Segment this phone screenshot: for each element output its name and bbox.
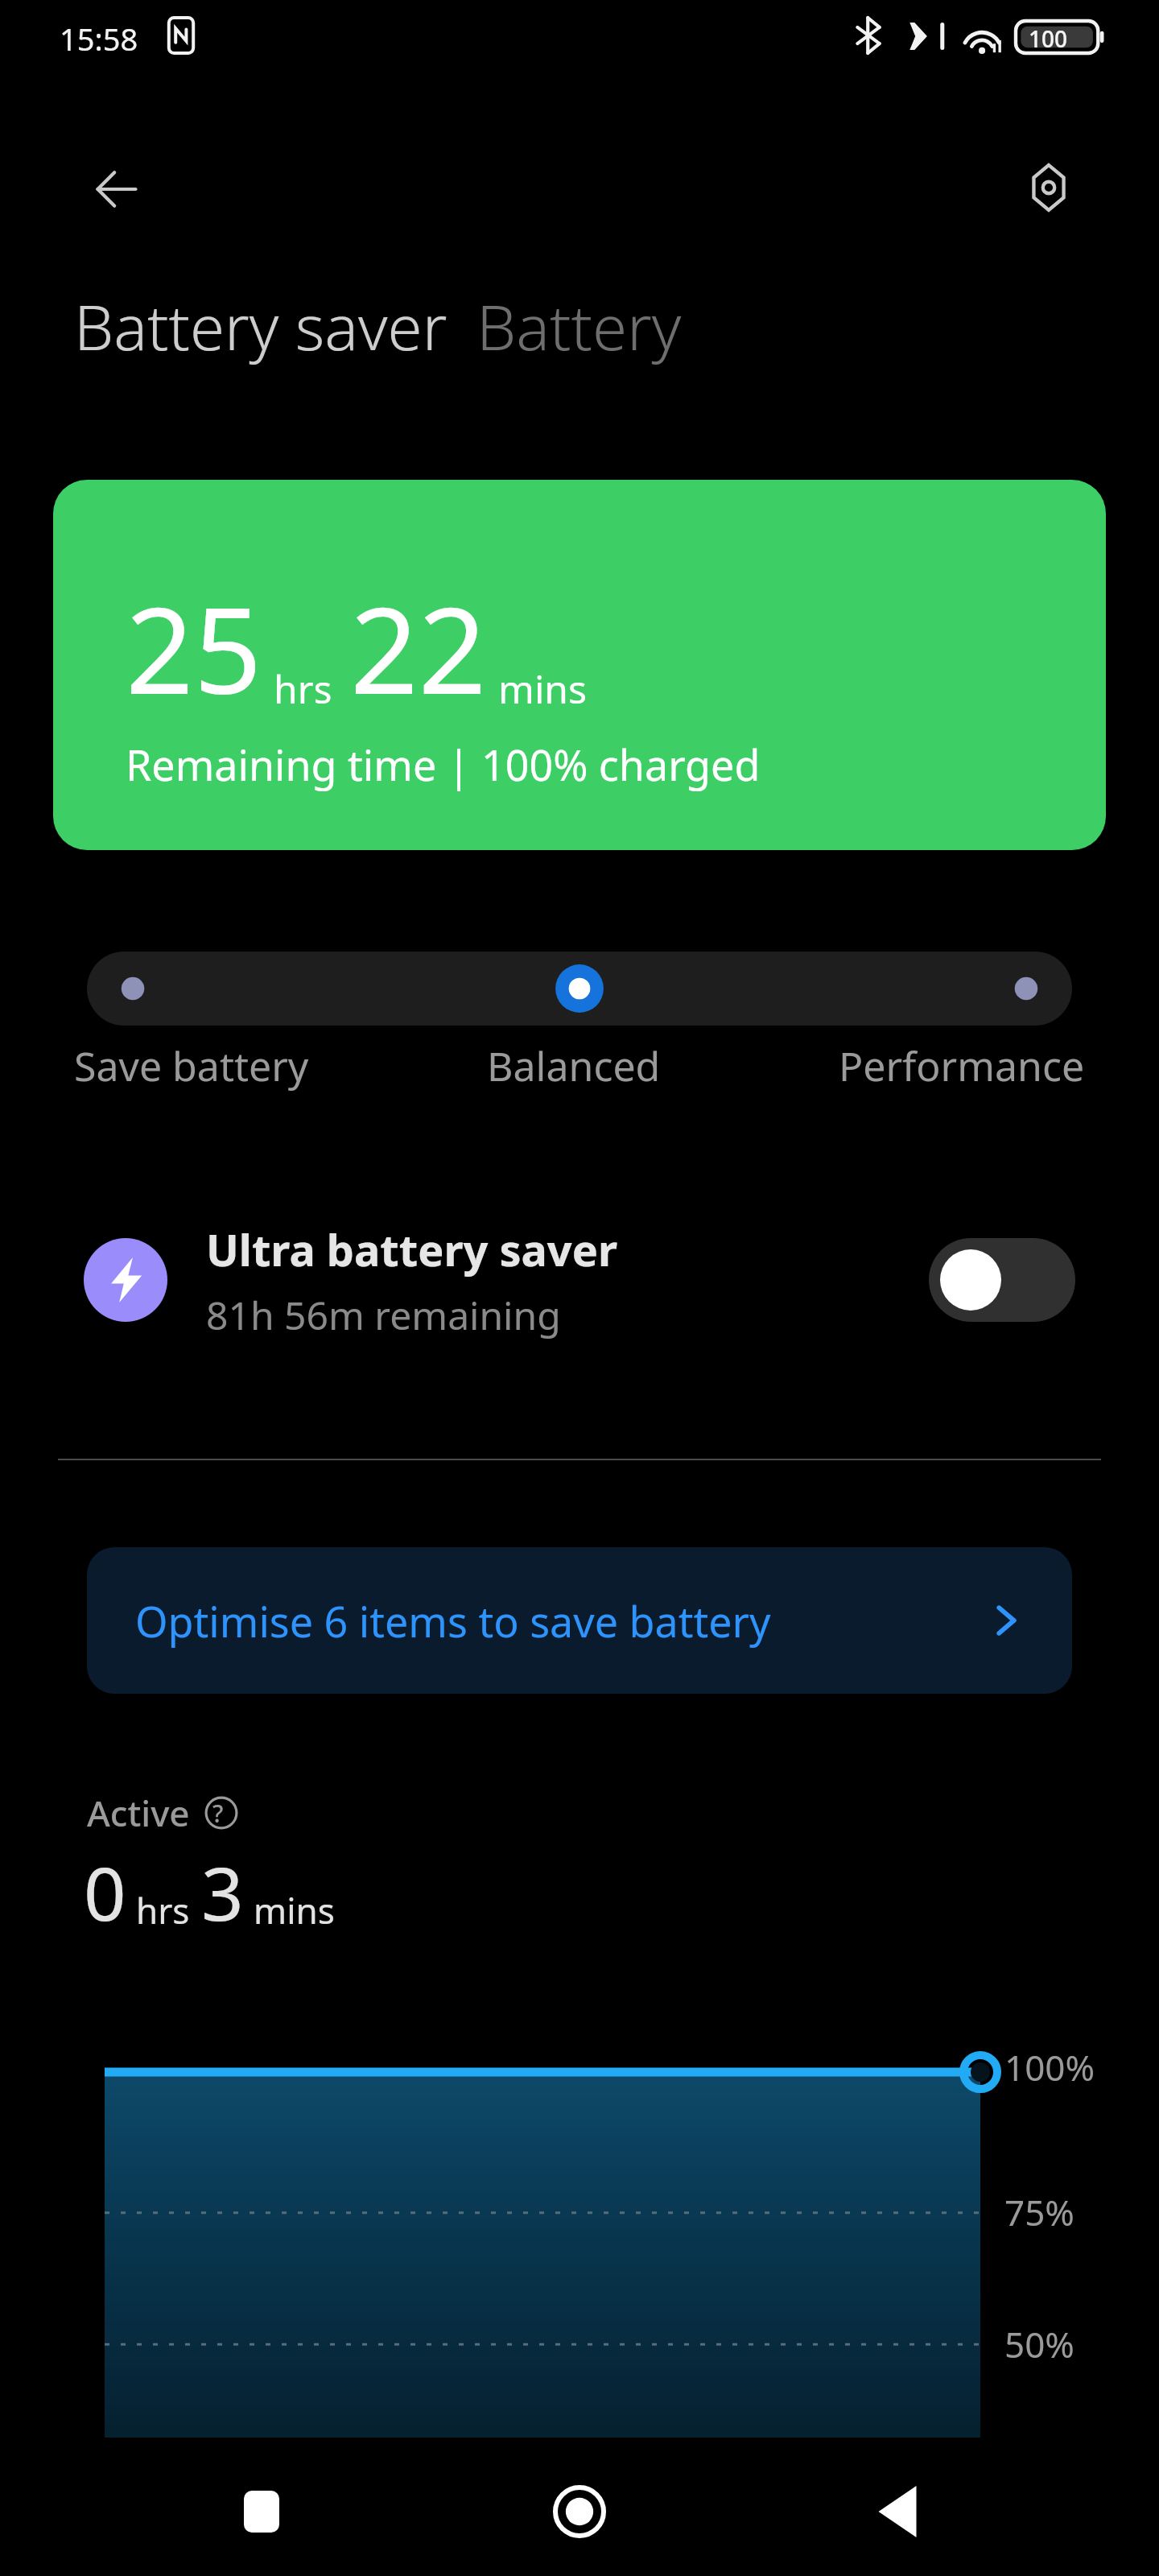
button[interactable]: Settings: [1004, 143, 1093, 232]
staticText: mins: [254, 1886, 335, 1934]
button[interactable]: Optimise 6 items to save battery: [87, 1547, 1072, 1694]
staticText: Active: [87, 1789, 190, 1837]
staticText: hrs: [274, 663, 332, 715]
staticText: Battery saver: [74, 283, 448, 369]
button[interactable]: Recent apps: [205, 2455, 318, 2568]
staticText: Performance: [839, 1038, 1085, 1093]
button[interactable]: Home: [523, 2455, 636, 2568]
button[interactable]: Active: [87, 1789, 250, 1837]
staticText: Battery: [476, 283, 682, 369]
staticText: Optimise 6 items to save battery: [135, 1592, 988, 1649]
staticText: 15:58: [60, 18, 138, 60]
button[interactable]: Back: [72, 145, 161, 233]
button[interactable]: 25: [53, 480, 1106, 850]
staticText: 100%: [1004, 2043, 1095, 2091]
button[interactable]: Back: [841, 2455, 954, 2568]
staticText: Remaining time | 100% charged: [126, 736, 761, 793]
staticText: 3: [201, 1842, 244, 1942]
button[interactable]: Ultra battery saver toggle: [929, 1238, 1075, 1322]
button[interactable]: Battery: [476, 283, 682, 369]
staticText: Save battery: [74, 1038, 309, 1093]
staticText: 81h 56m remaining: [206, 1289, 561, 1341]
staticText: Ultra battery saver: [206, 1220, 618, 1279]
staticText: hrs: [136, 1886, 190, 1934]
staticText: 25: [126, 567, 262, 729]
staticText: 50%: [1004, 2320, 1074, 2368]
button[interactable]: Battery saver: [74, 283, 448, 369]
staticText: Balanced: [487, 1038, 661, 1093]
staticText: mins: [498, 663, 587, 715]
staticText: 22: [350, 567, 487, 729]
staticText: 100: [1029, 23, 1068, 54]
button[interactable]: Ultra battery saver: [0, 1183, 1159, 1377]
staticText: ?: [212, 1797, 224, 1830]
staticText: 75%: [1004, 2188, 1074, 2236]
button[interactable]: [87, 952, 1072, 1026]
staticText: 0: [84, 1842, 126, 1942]
